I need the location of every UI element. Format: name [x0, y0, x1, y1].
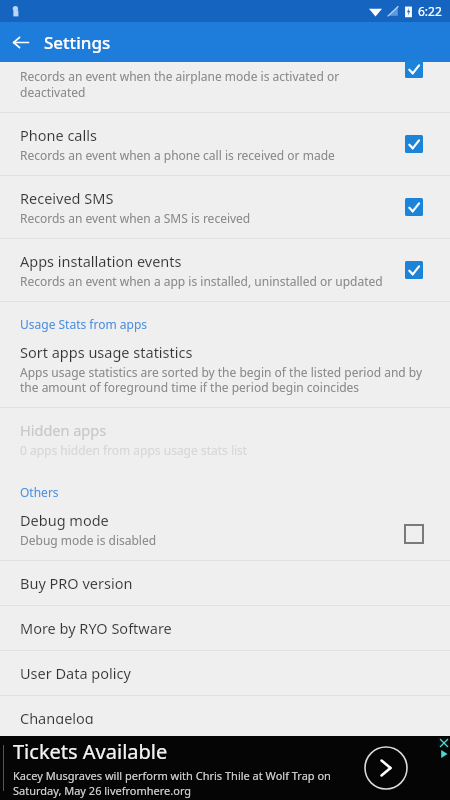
button[interactable]: Hidden apps	[0, 408, 450, 470]
staticText: 0 apps hidden from apps usage stats list	[20, 442, 248, 458]
staticText: Records an event when a phone call is re…	[20, 147, 335, 163]
staticText: Tickets Available	[13, 738, 168, 765]
staticText: User Data policy	[20, 663, 131, 683]
staticText: Records an event when a app is installed…	[20, 273, 383, 289]
button[interactable]: Apps installation events	[0, 239, 450, 301]
staticText: Debug mode is disabled	[20, 532, 157, 548]
staticText: Debug mode	[20, 510, 109, 530]
staticText: Buy PRO version	[20, 573, 133, 593]
staticText: Others	[20, 484, 59, 500]
button[interactable]: Records an event when the airplane mode …	[0, 62, 450, 100]
button[interactable]: Received SMS	[0, 176, 450, 238]
staticText: 6:22	[418, 3, 442, 19]
button[interactable]: Debug mode	[0, 508, 450, 560]
staticText: Phone calls	[20, 125, 97, 145]
staticText: Hidden apps	[20, 420, 107, 440]
staticText: Records an event when the airplane mode …	[20, 68, 389, 100]
staticText: Settings	[44, 31, 111, 54]
button[interactable]: Changelog	[0, 696, 450, 736]
button[interactable]: Buy PRO version	[0, 561, 450, 605]
staticText: Records an event when a SMS is received	[20, 210, 251, 226]
button[interactable]: User Data policy	[0, 651, 450, 695]
staticText: Kacey Musgraves will perform with Chris …	[13, 768, 331, 783]
button[interactable]: Back	[0, 22, 40, 62]
button[interactable]: Close ad	[438, 737, 449, 748]
staticText: Apps usage statistics are sorted by the …	[20, 364, 426, 395]
button[interactable]: Tickets Available	[0, 736, 450, 800]
button[interactable]: Open ad	[364, 746, 408, 790]
button[interactable]: More by RYO Software	[0, 606, 450, 650]
staticText: Usage Stats from apps	[20, 316, 148, 332]
button[interactable]: Sort apps usage statistics	[0, 340, 450, 407]
staticText: Apps installation events	[20, 251, 182, 271]
button[interactable]: Ad choices	[438, 748, 449, 759]
staticText: Saturday, May 26 livefromhere.org	[13, 783, 192, 798]
button[interactable]: Phone calls	[0, 113, 450, 175]
staticText: More by RYO Software	[20, 618, 172, 638]
staticText: Sort apps usage statistics	[20, 342, 193, 362]
staticText: Received SMS	[20, 188, 114, 208]
staticText: Changelog	[20, 708, 94, 724]
